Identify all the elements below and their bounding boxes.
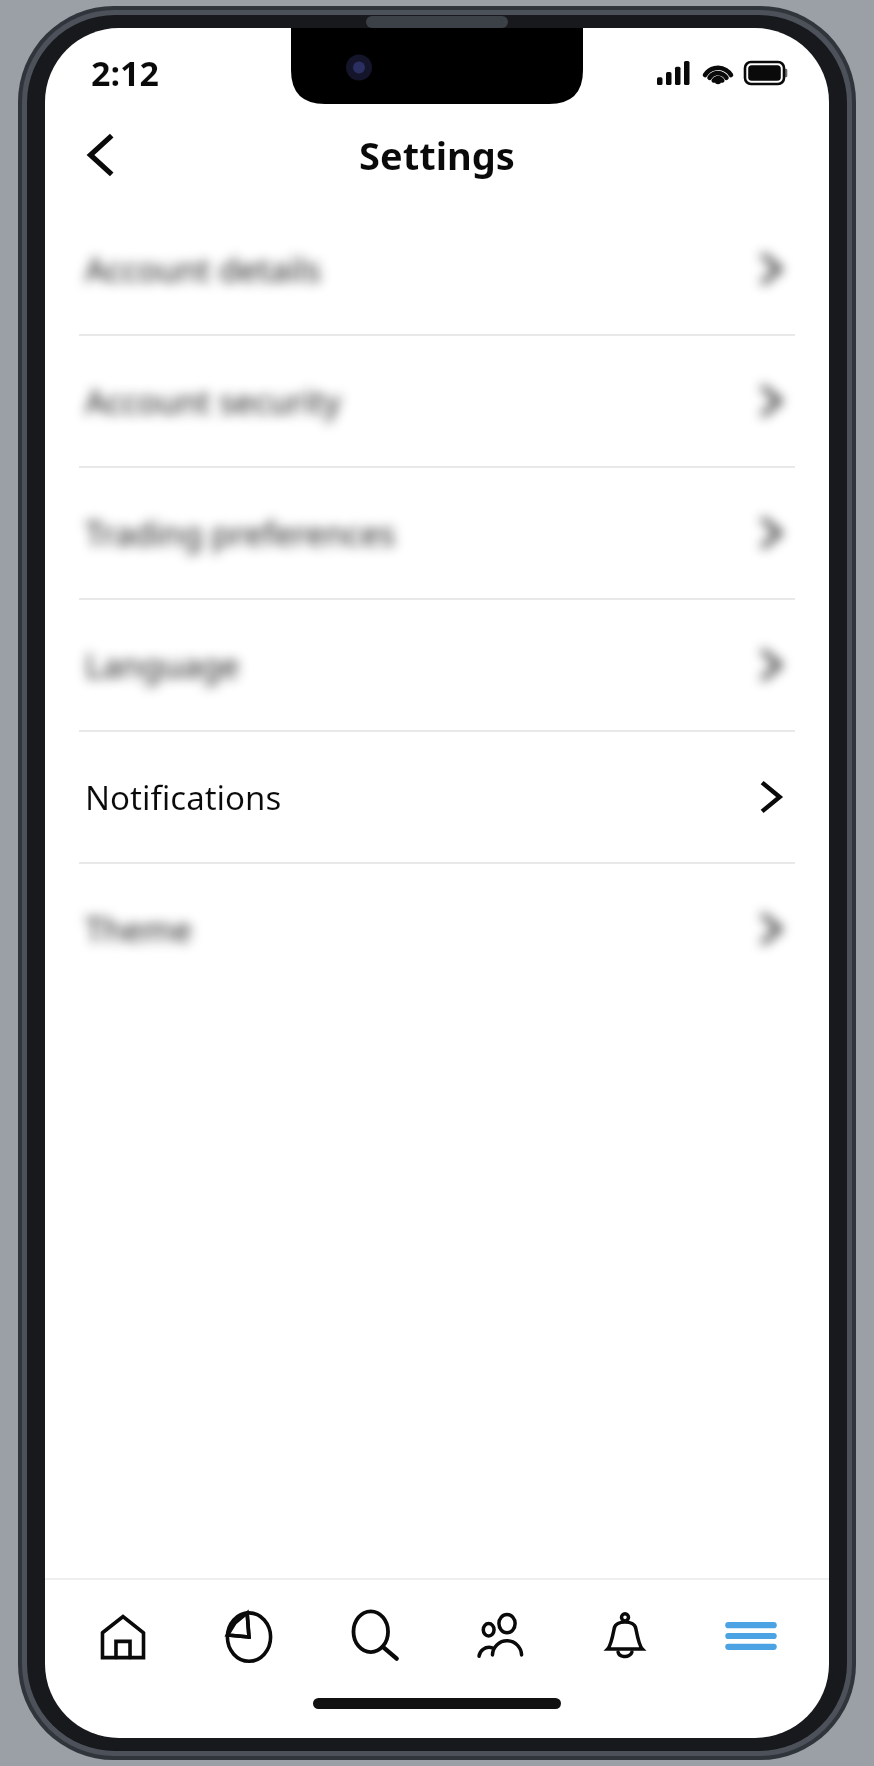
- staticText: Account details: [85, 247, 322, 292]
- staticText: Language: [85, 643, 240, 688]
- staticText: 2:12: [91, 50, 159, 96]
- button[interactable]: Account security: [45, 336, 829, 466]
- button[interactable]: Notifications: [45, 732, 829, 862]
- button[interactable]: Back: [63, 117, 139, 193]
- staticText: Account security: [85, 379, 341, 424]
- staticText: Notifications: [85, 775, 282, 820]
- button[interactable]: Account details: [45, 204, 829, 334]
- button[interactable]: Alerts: [567, 1584, 683, 1688]
- button[interactable]: Menu: [693, 1584, 809, 1688]
- button[interactable]: Search: [316, 1584, 432, 1688]
- button[interactable]: Home: [65, 1584, 181, 1688]
- staticText: Theme: [85, 907, 192, 952]
- staticText: Trading preferences: [85, 511, 396, 556]
- button[interactable]: Portfolio: [191, 1584, 307, 1688]
- button[interactable]: Community: [442, 1584, 558, 1688]
- button[interactable]: Theme: [45, 864, 829, 994]
- staticText: Settings: [359, 129, 515, 181]
- button[interactable]: Language: [45, 600, 829, 730]
- button[interactable]: Trading preferences: [45, 468, 829, 598]
